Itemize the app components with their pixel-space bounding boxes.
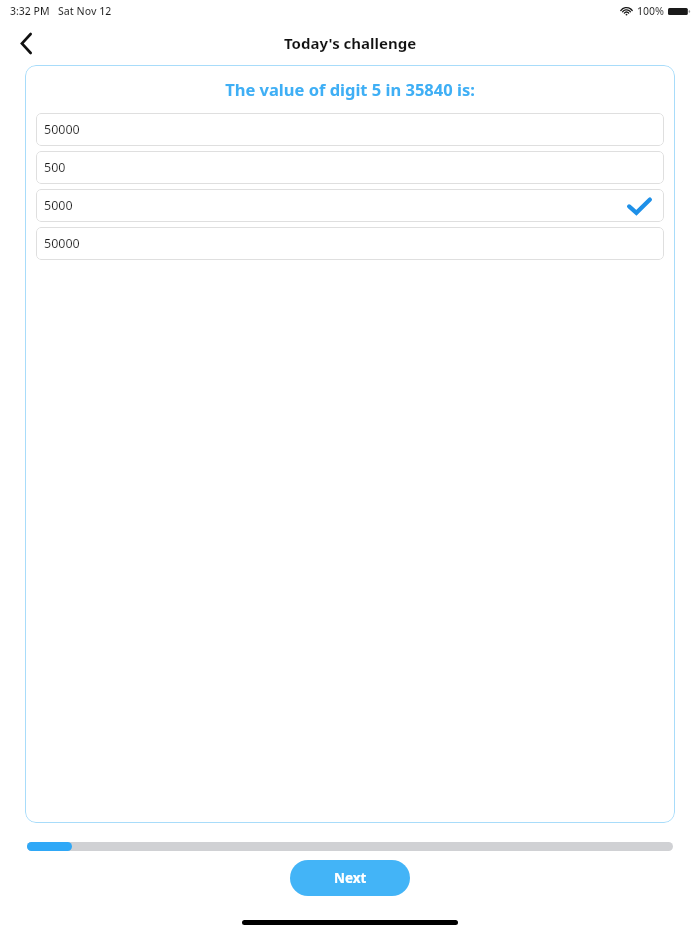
staticText: The value of digit 5 in 35840 is: <box>36 78 664 100</box>
staticText: 3:32 PM <box>10 4 50 18</box>
button[interactable]: 500 <box>36 151 664 184</box>
staticText: Today's challenge <box>284 33 417 53</box>
staticText: 5000 <box>44 197 73 214</box>
staticText: 50000 <box>44 235 80 252</box>
button[interactable]: 50000 <box>36 113 664 146</box>
button[interactable]: Next <box>290 860 410 896</box>
staticText: Sat Nov 12 <box>58 4 112 18</box>
button[interactable]: 50000 <box>36 227 664 260</box>
staticText: 50000 <box>44 121 80 138</box>
staticText: 500 <box>44 159 66 176</box>
staticText: 100% <box>637 4 664 18</box>
button[interactable]: 5000 <box>36 189 664 222</box>
staticText: Next <box>334 869 367 887</box>
button[interactable]: Back <box>10 27 42 59</box>
